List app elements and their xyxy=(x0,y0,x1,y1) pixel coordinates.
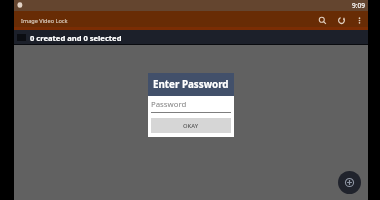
button[interactable]: More options xyxy=(351,12,368,29)
button[interactable]: Refresh xyxy=(332,11,351,30)
staticText: OKAY xyxy=(183,122,199,130)
staticText: 9:09 xyxy=(352,1,365,10)
staticText: Image Video Lock xyxy=(21,17,68,25)
button[interactable]: 0 created and 0 selected xyxy=(14,30,368,45)
staticText: 0 created and 0 selected xyxy=(30,33,122,43)
button[interactable]: Add xyxy=(338,171,361,194)
button[interactable]: Search xyxy=(313,11,332,30)
staticText: Password xyxy=(151,99,187,110)
button[interactable]: OKAY xyxy=(151,118,231,133)
staticText: Enter Password xyxy=(153,78,229,91)
